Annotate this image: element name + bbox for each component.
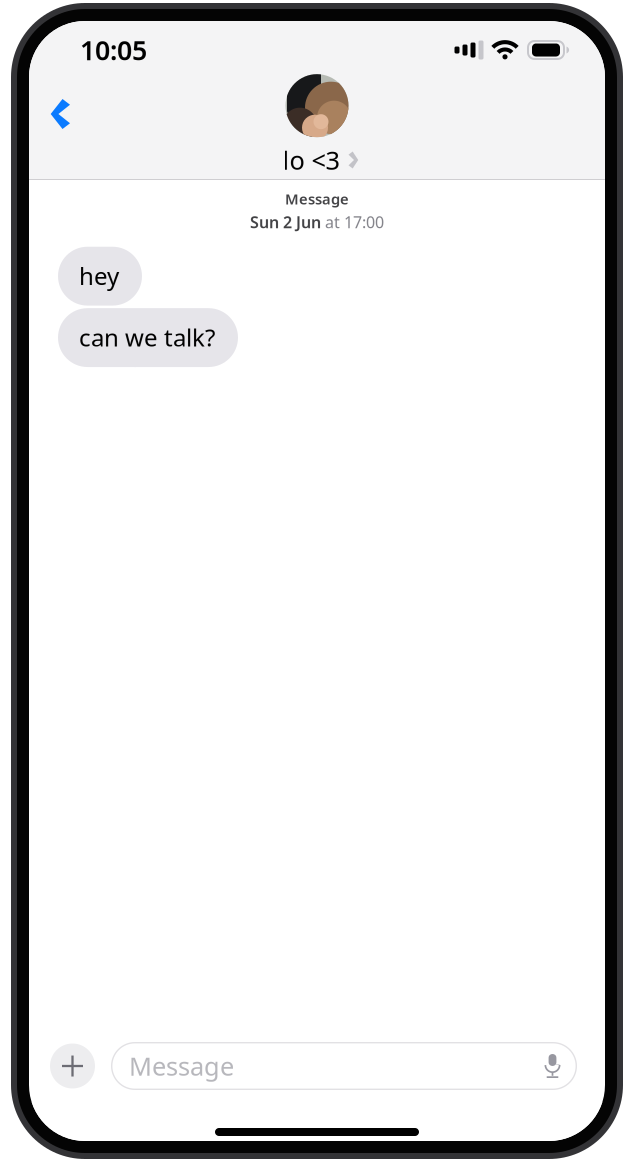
staticText: Message: [129, 1049, 234, 1083]
button[interactable]: Back: [29, 99, 88, 159]
staticText: can we talk?: [79, 321, 215, 353]
staticText: lo <3: [282, 143, 339, 177]
staticText: Sun 2 Jun: [250, 211, 321, 233]
staticText: at 17:00: [325, 211, 384, 233]
staticText: Message: [285, 189, 349, 208]
button[interactable]: Message: [111, 1042, 577, 1090]
button[interactable]: Add attachment: [50, 1043, 95, 1088]
staticText: 10:05: [80, 32, 147, 68]
staticText: hey: [79, 260, 119, 292]
